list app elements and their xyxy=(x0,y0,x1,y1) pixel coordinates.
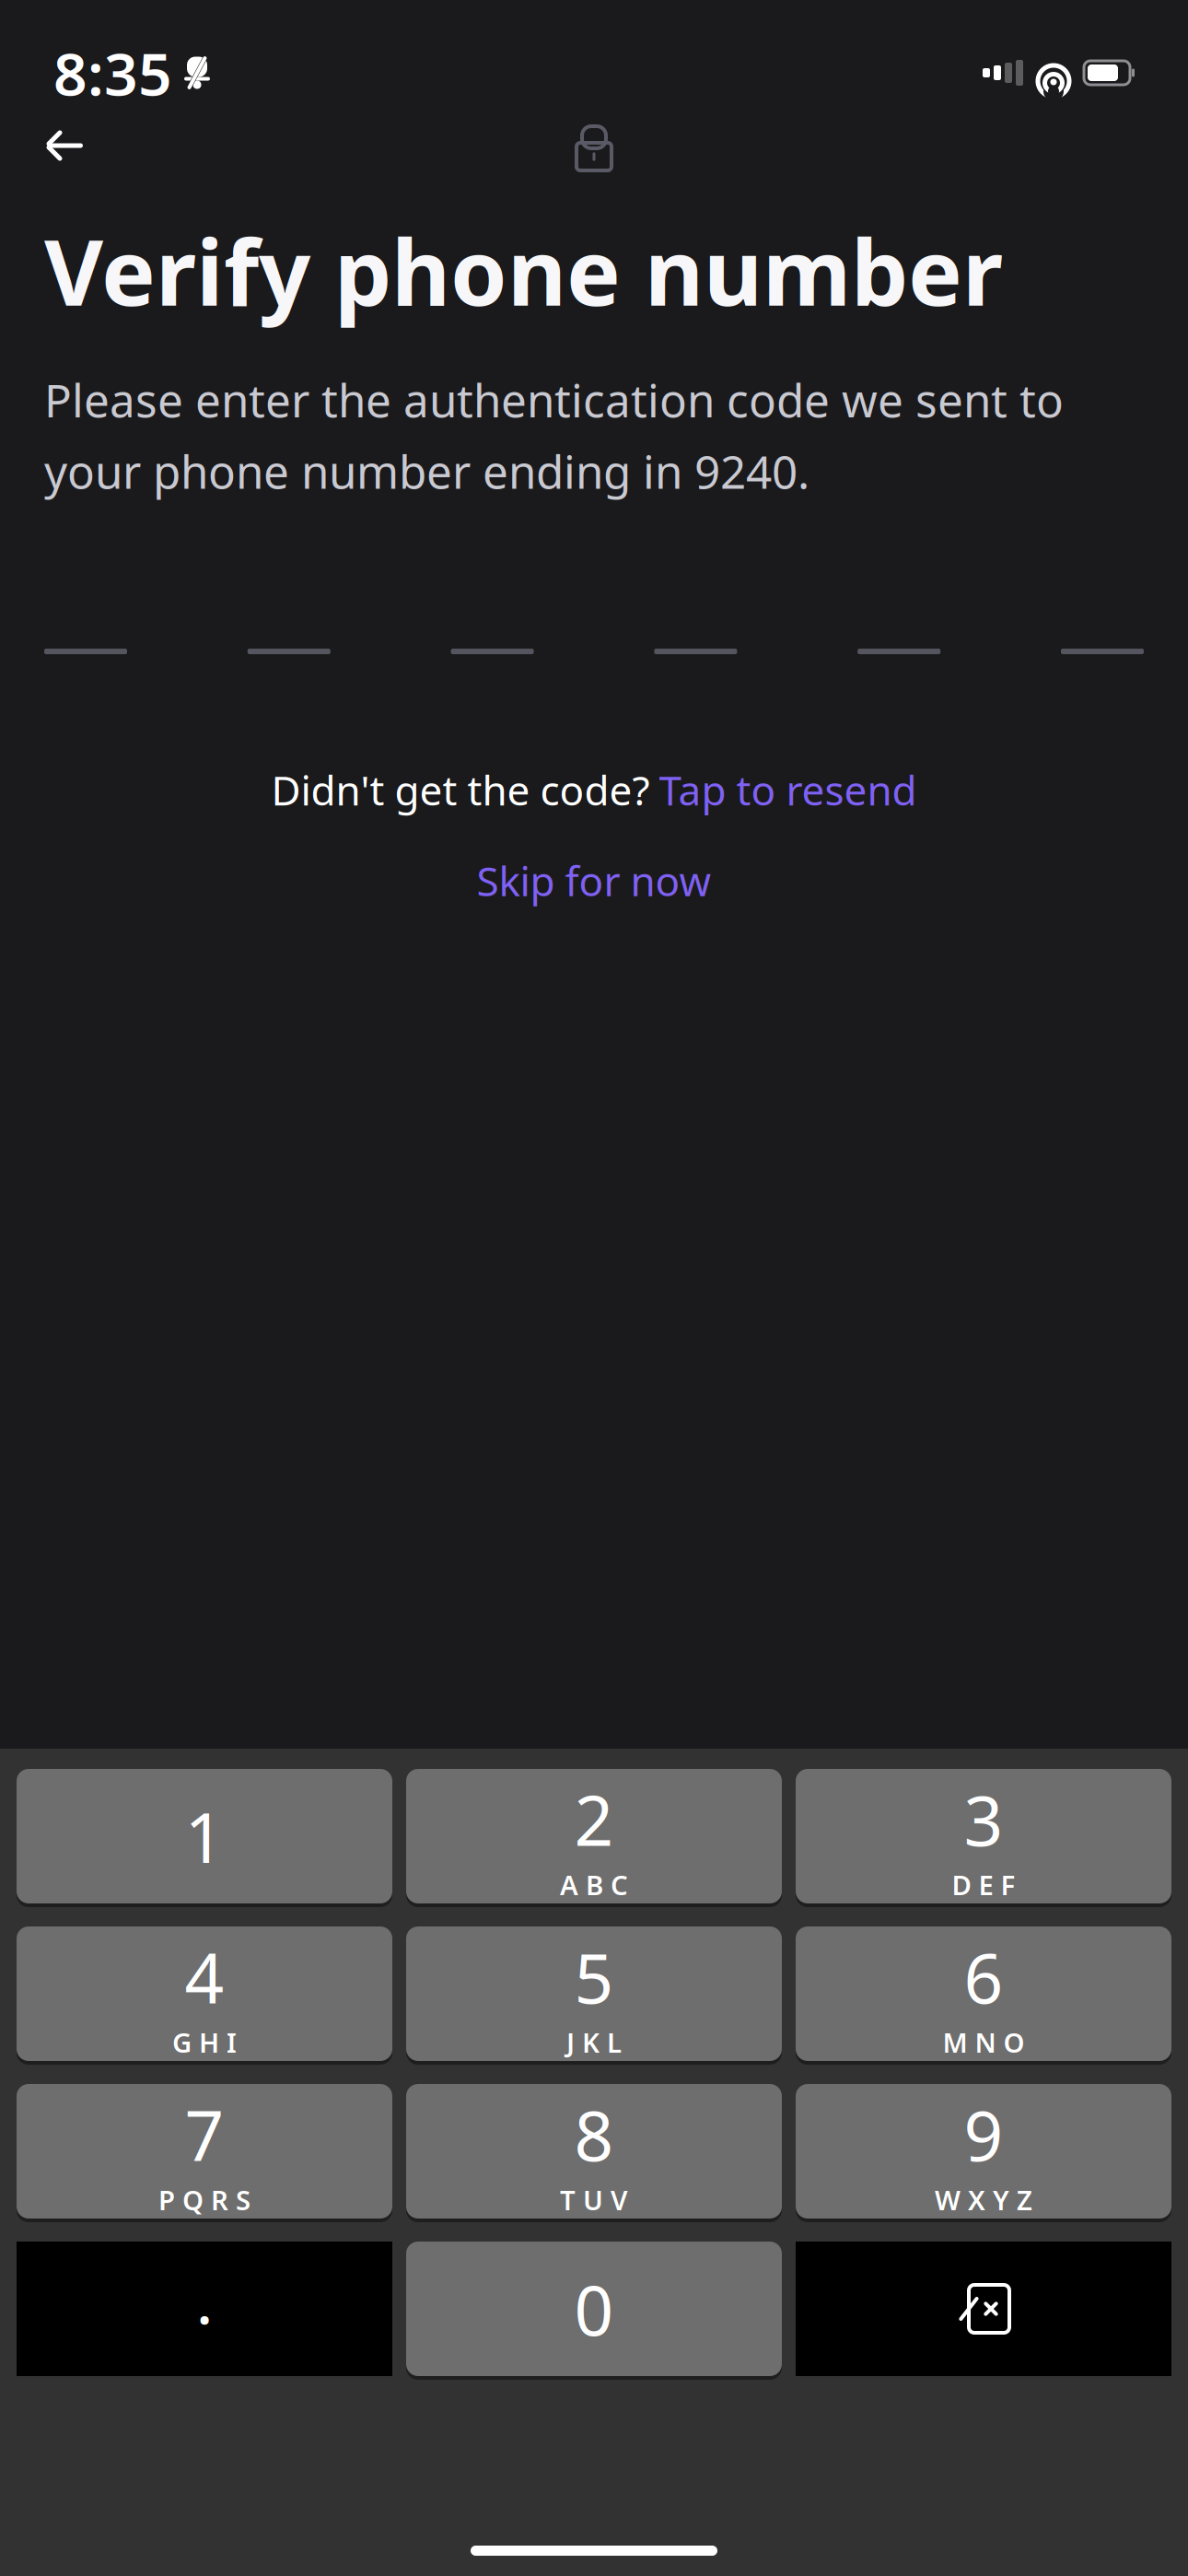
staticText: J K L xyxy=(566,2024,622,2060)
button[interactable]: 9 xyxy=(796,2084,1171,2219)
staticText: Please enter the authentication code we … xyxy=(44,369,1064,501)
staticText: 8 xyxy=(574,2089,614,2180)
staticText: Tap to resend xyxy=(659,763,917,817)
staticText: G H I xyxy=(172,2024,237,2060)
button[interactable]: 1 xyxy=(17,1769,392,1903)
staticText: D E F xyxy=(952,1867,1015,1903)
staticText: M N O xyxy=(943,2024,1025,2060)
staticText: 9 xyxy=(964,2089,1003,2180)
staticText: Verify phone number xyxy=(44,210,1003,331)
staticText: . xyxy=(197,2267,212,2339)
button[interactable]: 0 xyxy=(406,2242,782,2376)
staticText: 7 xyxy=(185,2089,224,2180)
button[interactable]: Didn't get the code? xyxy=(253,755,935,824)
button[interactable]: 3 xyxy=(796,1769,1171,1903)
staticText: Skip for now xyxy=(477,854,711,907)
staticText: 1 xyxy=(185,1790,224,1882)
button[interactable]: Back xyxy=(24,112,107,179)
staticText: A B C xyxy=(560,1867,628,1903)
button[interactable]: Period xyxy=(17,2242,392,2376)
staticText: 3 xyxy=(964,1773,1003,1865)
staticText: T U V xyxy=(560,2182,628,2218)
button[interactable]: 2 xyxy=(406,1769,782,1903)
staticText: Didn't get the code? xyxy=(271,763,650,817)
button[interactable]: 8 xyxy=(406,2084,782,2219)
button[interactable]: 6 xyxy=(796,1926,1171,2061)
staticText: W X Y Z xyxy=(935,2182,1032,2218)
staticText: 2 xyxy=(574,1773,614,1865)
button[interactable]: Delete xyxy=(796,2242,1171,2376)
button[interactable]: 7 xyxy=(17,2084,392,2219)
button[interactable]: Skip for now xyxy=(453,843,735,918)
button[interactable]: 4 xyxy=(17,1926,392,2061)
staticText: 8:35 xyxy=(53,34,172,112)
staticText: 5 xyxy=(574,1931,614,2022)
button[interactable]: 5 xyxy=(406,1926,782,2061)
staticText: 4 xyxy=(185,1931,224,2022)
staticText: P Q R S xyxy=(158,2182,250,2218)
staticText: 6 xyxy=(964,1931,1003,2022)
staticText: 0 xyxy=(574,2263,614,2355)
